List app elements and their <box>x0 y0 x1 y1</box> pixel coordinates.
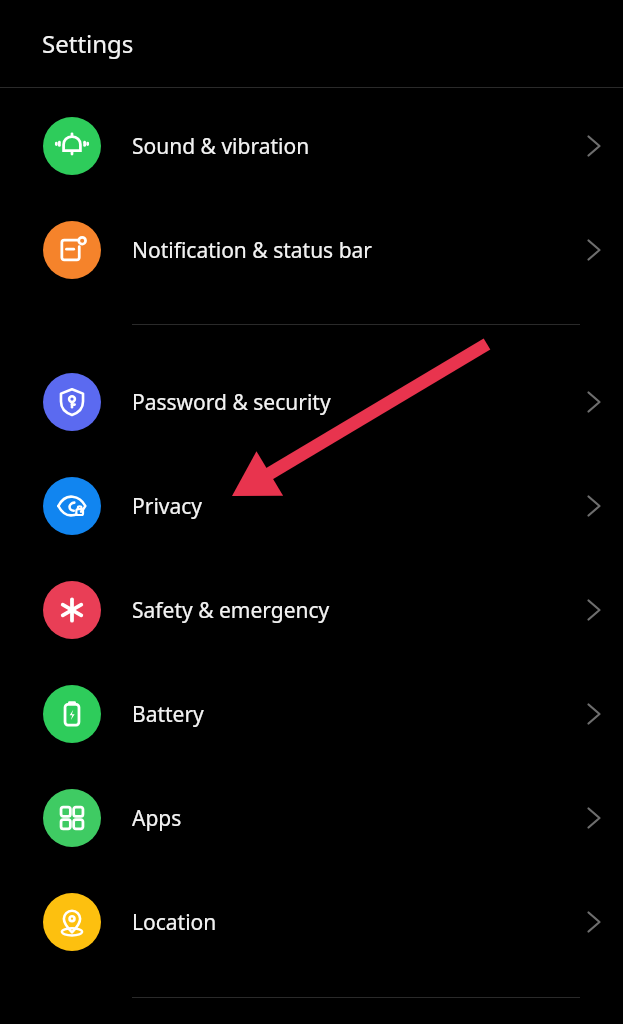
staticText: Password & security <box>132 388 574 417</box>
staticText: Apps <box>132 804 574 833</box>
staticText: Notification & status bar <box>132 236 574 265</box>
button[interactable]: Sound & vibration <box>0 94 623 198</box>
staticText: Battery <box>132 700 574 729</box>
staticText: Safety & emergency <box>132 596 574 625</box>
staticText: Sound & vibration <box>132 132 574 161</box>
button[interactable]: Notification & status bar <box>0 198 623 302</box>
staticText: Location <box>132 908 574 937</box>
button[interactable]: Battery <box>0 662 623 766</box>
staticText: Settings <box>42 27 134 60</box>
staticText: Privacy <box>132 492 574 521</box>
button[interactable]: Apps <box>0 766 623 870</box>
button[interactable]: Password & security <box>0 350 623 454</box>
button[interactable]: Location <box>0 870 623 974</box>
button[interactable]: Safety & emergency <box>0 558 623 662</box>
button[interactable]: Privacy <box>0 454 623 558</box>
